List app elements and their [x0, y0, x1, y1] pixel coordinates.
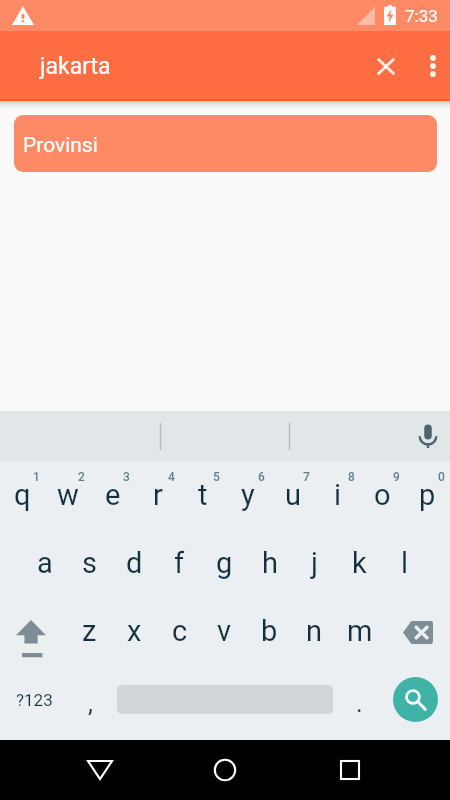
staticText: 9 [393, 470, 400, 484]
staticText: 3 [123, 470, 130, 484]
button[interactable]: t [180, 461, 225, 529]
staticText: 5 [213, 470, 220, 484]
staticText: d [126, 546, 143, 580]
staticText: b [261, 614, 278, 648]
button[interactable]: g [202, 529, 247, 597]
staticText: r [153, 478, 163, 512]
button[interactable]: More options [411, 31, 450, 101]
button[interactable]: Voice input [405, 411, 450, 461]
button[interactable]: f [157, 529, 202, 597]
button[interactable]: c [157, 597, 202, 665]
staticText: 6 [258, 470, 265, 484]
staticText: p [419, 478, 436, 512]
staticText: 2 [78, 470, 85, 484]
button[interactable]: n [292, 597, 337, 665]
button[interactable]: ?123 [0, 665, 68, 733]
staticText: m [347, 614, 373, 648]
button[interactable]: p [405, 461, 450, 529]
button[interactable]: Recents [320, 740, 380, 800]
button[interactable]: h [247, 529, 292, 597]
button[interactable]: j [292, 529, 337, 597]
staticText: w [57, 478, 79, 512]
button[interactable]: w [45, 461, 90, 529]
staticText: t [198, 478, 208, 512]
staticText: q [14, 478, 31, 512]
staticText: a [37, 546, 53, 580]
button[interactable]: Clear query [359, 31, 411, 101]
staticText: 8 [348, 470, 355, 484]
button[interactable]: l [382, 529, 427, 597]
button[interactable]: v [202, 597, 247, 665]
staticText: c [172, 614, 188, 648]
staticText: g [216, 546, 233, 580]
staticText: o [374, 478, 391, 512]
button[interactable]: Back [70, 740, 130, 800]
staticText: x [127, 614, 142, 648]
button[interactable]: a [22, 529, 67, 597]
button[interactable]: o [360, 461, 405, 529]
button[interactable]: e [90, 461, 135, 529]
button[interactable]: i [315, 461, 360, 529]
button[interactable]: . [337, 665, 382, 733]
button[interactable]: Backspace [382, 597, 450, 665]
button[interactable]: m [337, 597, 382, 665]
staticText: ?123 [16, 690, 53, 710]
button[interactable]: Search [382, 665, 450, 733]
staticText: k [352, 546, 367, 580]
button[interactable]: k [337, 529, 382, 597]
button[interactable]: s [67, 529, 112, 597]
button[interactable]: y [225, 461, 270, 529]
button[interactable]: , [68, 665, 113, 733]
staticText: . [356, 689, 363, 718]
staticText: j [311, 546, 318, 580]
button[interactable]: b [247, 597, 292, 665]
staticText: f [174, 546, 185, 580]
button[interactable]: r [135, 461, 180, 529]
staticText: , [88, 689, 93, 718]
staticText: 7:33 [405, 6, 438, 26]
staticText: 1 [33, 470, 40, 484]
button[interactable]: d [112, 529, 157, 597]
button[interactable]: z [67, 597, 112, 665]
staticText: y [241, 478, 255, 512]
staticText: i [334, 478, 342, 512]
staticText: n [306, 614, 323, 648]
staticText: 4 [168, 470, 175, 484]
button[interactable]: Shift [0, 597, 67, 665]
staticText: z [82, 614, 97, 648]
button[interactable]: Provinsi [14, 115, 437, 172]
staticText: jakarta [40, 53, 111, 80]
staticText: 7 [303, 470, 310, 484]
staticText: v [217, 614, 232, 648]
staticText: 0 [438, 470, 445, 484]
staticText: l [401, 546, 409, 580]
button[interactable]: Home [195, 740, 255, 800]
staticText: u [285, 478, 301, 512]
button[interactable]: q [0, 461, 45, 529]
button[interactable] [113, 665, 337, 733]
staticText: e [105, 478, 121, 512]
staticText: s [82, 546, 97, 580]
button[interactable]: u [270, 461, 315, 529]
button[interactable]: x [112, 597, 157, 665]
staticText: Provinsi [23, 133, 98, 158]
staticText: h [262, 546, 278, 580]
